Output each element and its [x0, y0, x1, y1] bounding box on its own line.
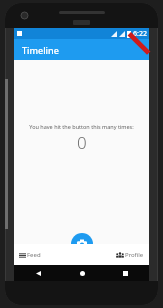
button[interactable]: Feed — [17, 248, 43, 262]
staticText: Feed — [27, 251, 41, 259]
staticText: 6:22 — [133, 29, 147, 39]
staticText: Profile — [125, 251, 144, 259]
staticText: 0 — [77, 131, 87, 154]
button[interactable]: Take photo — [71, 233, 93, 255]
button[interactable]: Profile — [114, 248, 146, 262]
button[interactable]: Back — [32, 267, 44, 279]
staticText: Timeline — [22, 44, 59, 56]
button[interactable]: Home — [76, 267, 88, 279]
staticText: You have hit the button this many times: — [29, 123, 134, 130]
button[interactable]: Recent apps — [119, 267, 131, 279]
